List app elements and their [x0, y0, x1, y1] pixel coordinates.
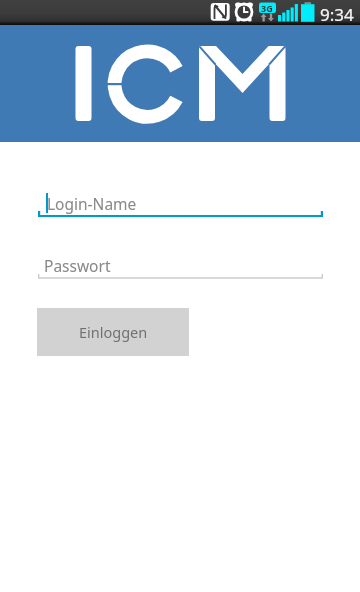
- button[interactable]: Passwort: [38, 237, 323, 285]
- button[interactable]: Login-Name: [38, 175, 323, 223]
- staticText: Login-Name: [47, 193, 137, 214]
- staticText: Einloggen: [79, 322, 148, 342]
- staticText: 9:34: [320, 3, 354, 26]
- button[interactable]: Einloggen: [37, 308, 189, 356]
- staticText: 3G: [261, 2, 274, 14]
- staticText: Passwort: [44, 255, 111, 276]
